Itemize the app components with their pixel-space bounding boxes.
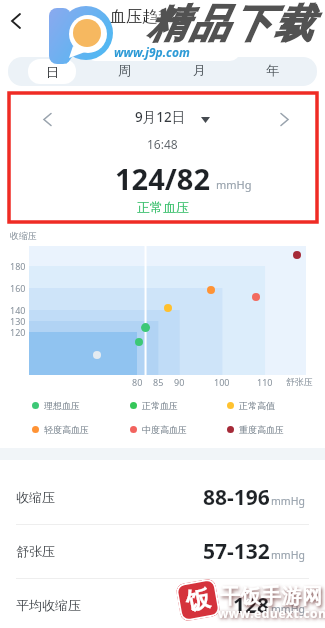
button[interactable]: 日 [28,59,76,84]
staticText: 85 [153,376,164,388]
button[interactable]: 周 [104,56,144,83]
staticText: 57-132 [203,537,270,566]
staticText: www.eduext.com [218,605,325,621]
staticText: 轻度高血压 [44,424,89,435]
button[interactable]: 年 [252,56,292,83]
staticText: mmHg [271,602,305,616]
button[interactable]: 平均收缩压 [0,578,325,628]
button[interactable]: 收缩压 [0,470,325,524]
staticText: 9月12日 [135,108,186,126]
staticText: 中度高血压 [142,424,187,435]
staticText: 160 [10,282,26,294]
staticText: 月 [193,62,206,78]
staticText: 饭 [184,583,212,617]
staticText: www.j9p.com [114,44,190,60]
staticText: 舒张压 [16,543,55,559]
button[interactable] [270,104,300,134]
staticText: mmHg [216,177,252,192]
staticText: 重度高血压 [239,424,284,435]
staticText: 120 [10,326,26,338]
staticText: 精品下载 [146,0,314,48]
button[interactable]: 9月12日 [135,104,215,130]
staticText: 日 [46,64,59,80]
staticText: 正常高值 [239,400,275,411]
staticText: 110 [257,376,273,388]
staticText: 血压趋势图 [110,7,190,27]
staticText: 收缩压 [16,489,55,505]
staticText: 140 [10,304,26,316]
staticText: 正常血压 [142,400,178,411]
staticText: 90 [174,376,185,388]
button[interactable] [32,104,62,134]
staticText: 正常血压 [137,199,189,215]
staticText: mmHg [271,494,305,508]
staticText: 16:48 [147,136,178,152]
staticText: 周 [118,62,131,78]
staticText: 180 [10,260,26,272]
staticText: 年 [266,62,279,78]
staticText: 80 [132,376,143,388]
button[interactable]: 月 [179,56,219,83]
staticText: 理想血压 [44,400,80,411]
staticText: 平均收缩压 [16,597,81,613]
button[interactable]: 舒张压 [0,524,325,578]
staticText: 100 [214,376,230,388]
staticText: 130 [10,315,26,327]
button[interactable] [0,5,32,37]
staticText: 舒张压 [286,376,313,387]
staticText: 124/82 [115,159,210,198]
staticText: 干饭手游网 [220,584,323,609]
staticText: 128 [233,591,270,620]
staticText: 88-196 [203,483,270,512]
button[interactable]: 正常血压 [137,199,189,215]
staticText: mmHg [271,548,305,562]
staticText: 收缩压 [10,230,37,241]
